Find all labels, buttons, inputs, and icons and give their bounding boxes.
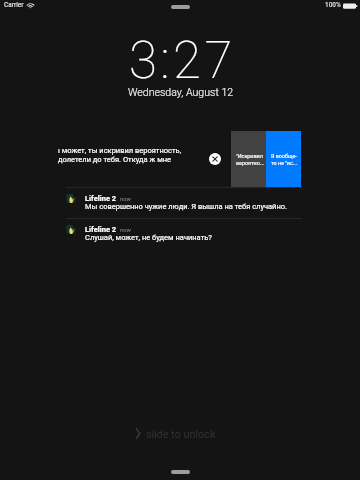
- staticText: "Искривил: [236, 153, 263, 159]
- staticText: то не "ис...: [271, 160, 298, 166]
- staticText: Lifeline 2: [85, 225, 117, 234]
- staticText: вероятно...: [236, 160, 265, 166]
- button[interactable]: Dismiss notification: [209, 153, 221, 165]
- staticText: Carrier: [4, 1, 24, 9]
- button[interactable]: Я вообще-: [266, 131, 301, 187]
- staticText: Lifeline 2: [85, 194, 117, 203]
- button[interactable]: Lifeline 2: [0, 219, 360, 249]
- staticText: долетели до тебя. Откуда ж мне: [58, 155, 171, 164]
- staticText: ı может, ты искривил вероятность,: [58, 146, 182, 155]
- button[interactable]: "Искривил: [231, 131, 266, 187]
- staticText: Wednesday, August 12: [128, 86, 234, 98]
- button[interactable]: Slide to unlock: [135, 427, 216, 440]
- button[interactable]: Lifeline 2: [0, 188, 360, 218]
- staticText: Я вообще-: [271, 153, 297, 159]
- staticText: 100%: [325, 1, 341, 9]
- staticText: now: [120, 227, 131, 234]
- staticText: Слушай, может, не будем начинать?: [85, 233, 212, 242]
- staticText: Мы совершенно чужие люди. Я вышла на теб…: [85, 202, 288, 211]
- staticText: slide to unlock: [146, 428, 216, 441]
- staticText: now: [120, 196, 131, 203]
- staticText: 3:27: [129, 31, 236, 91]
